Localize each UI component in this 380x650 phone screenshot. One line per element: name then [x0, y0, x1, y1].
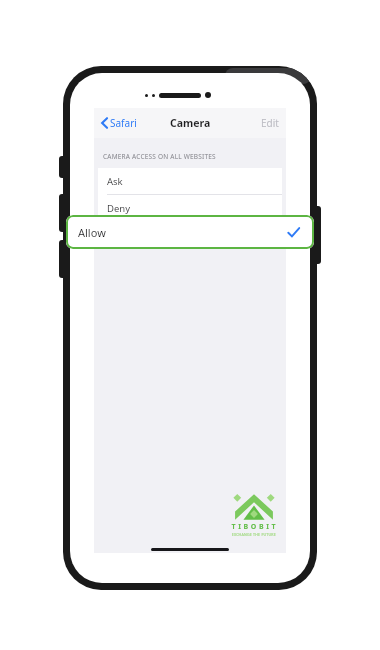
staticText: Safari	[110, 116, 137, 130]
button[interactable]: Allow	[66, 215, 314, 249]
staticText: T I B O B I T	[231, 522, 276, 532]
staticText: Ask	[107, 175, 123, 188]
staticText: Deny	[107, 202, 131, 215]
button[interactable]: Edit	[254, 111, 286, 135]
staticText: CAMERA ACCESS ON ALL WEBSITES	[103, 152, 216, 161]
button[interactable]: Safari	[99, 112, 139, 134]
staticText: Camera	[170, 116, 211, 130]
staticText: Allow	[78, 225, 106, 240]
button[interactable]: Allow	[98, 222, 282, 248]
button[interactable]: Ask	[98, 168, 282, 194]
staticText: EXCHANGE THE FUTURE	[231, 532, 276, 537]
button[interactable]: Deny	[98, 195, 282, 221]
